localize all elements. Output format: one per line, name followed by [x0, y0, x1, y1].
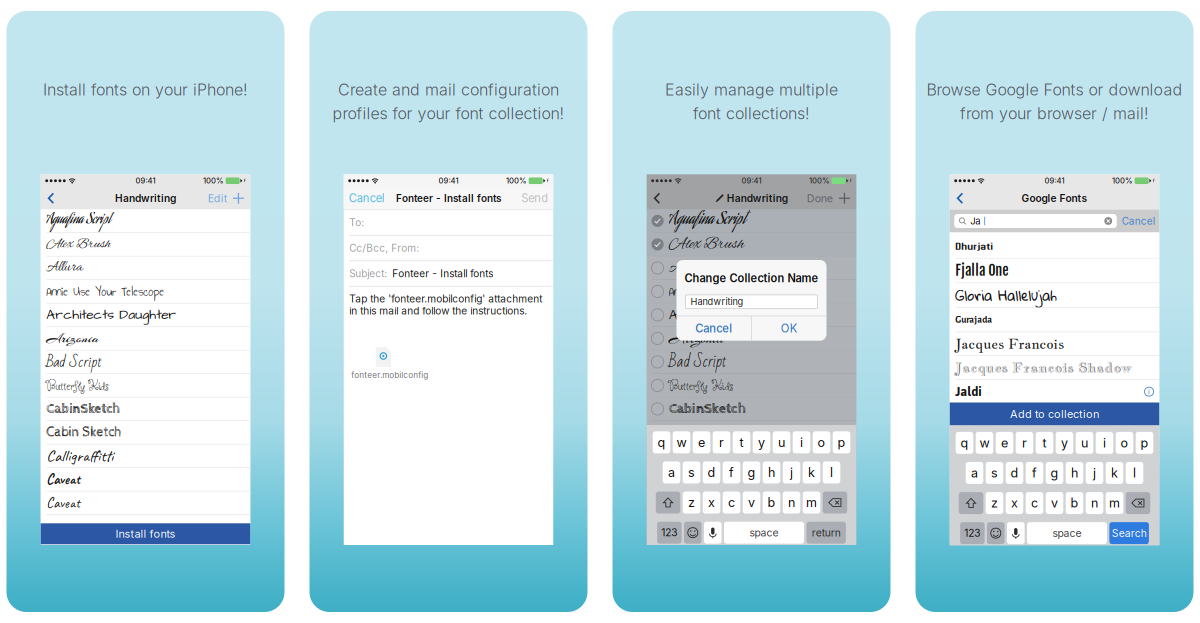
- button[interactable]: p: [1136, 432, 1153, 454]
- button[interactable]: h: [1066, 462, 1083, 484]
- button[interactable]: Annie Use Your Telescope: [41, 280, 250, 303]
- button[interactable]: Shift: [656, 492, 680, 514]
- button[interactable]: c: [1026, 492, 1043, 514]
- button[interactable]: j: [783, 461, 800, 483]
- button[interactable]: m: [1106, 492, 1123, 514]
- button[interactable]: r: [713, 431, 730, 453]
- button[interactable]: d: [1006, 462, 1023, 484]
- button[interactable]: Jacques Francois: [950, 332, 1159, 356]
- button[interactable]: y: [753, 431, 770, 453]
- button[interactable]: Alex Brush: [647, 233, 856, 256]
- button[interactable]: s: [986, 462, 1003, 484]
- button[interactable]: Delete: [823, 492, 847, 514]
- button[interactable]: OK: [752, 316, 826, 341]
- button[interactable]: u: [773, 431, 790, 453]
- button[interactable]: Dictation: [1007, 522, 1025, 544]
- button[interactable]: l: [1126, 462, 1143, 484]
- button[interactable]: n: [1086, 492, 1103, 514]
- button[interactable]: p: [833, 431, 850, 453]
- button[interactable]: g: [743, 461, 760, 483]
- button[interactable]: Shift: [959, 492, 983, 514]
- button[interactable]: v: [743, 492, 760, 514]
- button[interactable]: n: [783, 492, 800, 514]
- button[interactable]: u: [1076, 432, 1093, 454]
- button[interactable]: t: [1036, 432, 1053, 454]
- button[interactable]: l: [823, 461, 840, 483]
- button[interactable]: Back: [650, 187, 664, 209]
- button[interactable]: y: [1056, 432, 1073, 454]
- button[interactable]: t: [733, 431, 750, 453]
- button[interactable]: Dictation: [704, 522, 722, 544]
- button[interactable]: Allura: [647, 256, 856, 280]
- button[interactable]: w: [673, 431, 690, 453]
- button[interactable]: space: [724, 522, 804, 544]
- button[interactable]: f: [723, 461, 740, 483]
- button[interactable]: d: [703, 461, 720, 483]
- button[interactable]: q: [956, 432, 973, 454]
- button[interactable]: Cancel: [349, 187, 385, 209]
- button[interactable]: x: [703, 492, 720, 514]
- button[interactable]: w: [976, 432, 993, 454]
- button[interactable]: Edit: [205, 187, 230, 209]
- button[interactable]: Arizonia: [41, 327, 250, 350]
- button[interactable]: Architects Daughter: [647, 303, 856, 327]
- button[interactable]: return: [806, 522, 846, 544]
- button[interactable]: Install fonts: [41, 523, 250, 544]
- button[interactable]: Allura: [41, 256, 250, 280]
- button[interactable]: b: [763, 492, 780, 514]
- button[interactable]: Fjalla One: [950, 258, 1159, 283]
- button[interactable]: Search: [1109, 522, 1149, 544]
- button[interactable]: e: [693, 431, 710, 453]
- button[interactable]: Delete: [1126, 492, 1150, 514]
- button[interactable]: Cancel: [676, 316, 751, 341]
- button[interactable]: Arizonia: [647, 327, 856, 350]
- button[interactable]: a: [966, 462, 983, 484]
- button[interactable]: c: [723, 492, 740, 514]
- button[interactable]: o: [813, 431, 830, 453]
- button[interactable]: Done: [804, 187, 836, 209]
- button[interactable]: Aguafina Script: [647, 209, 856, 233]
- button[interactable]: CabinSketch: [647, 397, 856, 421]
- button[interactable]: Butterfly Kids: [647, 374, 856, 397]
- button[interactable]: Send: [521, 187, 548, 209]
- button[interactable]: b: [1066, 492, 1083, 514]
- button[interactable]: Dhurjati: [950, 232, 1159, 258]
- button[interactable]: Alex Brush: [41, 233, 250, 256]
- button[interactable]: k: [803, 461, 820, 483]
- button[interactable]: Jacques Francois Shadow: [950, 356, 1159, 380]
- button[interactable]: v: [1046, 492, 1063, 514]
- button[interactable]: i: [1096, 432, 1113, 454]
- button[interactable]: z: [986, 492, 1003, 514]
- button[interactable]: o: [1116, 432, 1133, 454]
- button[interactable]: Caveat: [41, 468, 250, 491]
- button[interactable]: x: [1006, 492, 1023, 514]
- button[interactable]: e: [996, 432, 1013, 454]
- button[interactable]: Emoji: [987, 522, 1005, 544]
- button[interactable]: m: [803, 492, 820, 514]
- button[interactable]: Jaldi: [950, 380, 1159, 403]
- button[interactable]: a: [663, 461, 680, 483]
- button[interactable]: Gloria Hallelujah: [950, 283, 1159, 308]
- button[interactable]: s: [683, 461, 700, 483]
- button[interactable]: r: [1016, 432, 1033, 454]
- button[interactable]: Cabin Sketch: [41, 421, 250, 444]
- button[interactable]: Aguafina Script: [41, 209, 250, 233]
- button[interactable]: Back: [953, 187, 967, 209]
- button[interactable]: Cancel: [1122, 215, 1155, 227]
- button[interactable]: z: [683, 492, 700, 514]
- button[interactable]: 123: [657, 522, 682, 544]
- button[interactable]: Butterfly Kids: [41, 374, 250, 397]
- button[interactable]: Bad Script: [647, 350, 856, 374]
- button[interactable]: space: [1027, 522, 1107, 544]
- button[interactable]: Caveat: [41, 491, 250, 515]
- button[interactable]: Architects Daughter: [41, 303, 250, 327]
- button[interactable]: Add collection: [230, 187, 247, 209]
- button[interactable]: Back: [44, 187, 58, 209]
- button[interactable]: Add collection: [836, 187, 853, 209]
- button[interactable]: f: [1026, 462, 1043, 484]
- button[interactable]: Calligraffitti: [41, 444, 250, 468]
- button[interactable]: h: [763, 461, 780, 483]
- button[interactable]: Bad Script: [41, 350, 250, 374]
- button[interactable]: j: [1086, 462, 1103, 484]
- button[interactable]: Gurajada: [950, 308, 1159, 332]
